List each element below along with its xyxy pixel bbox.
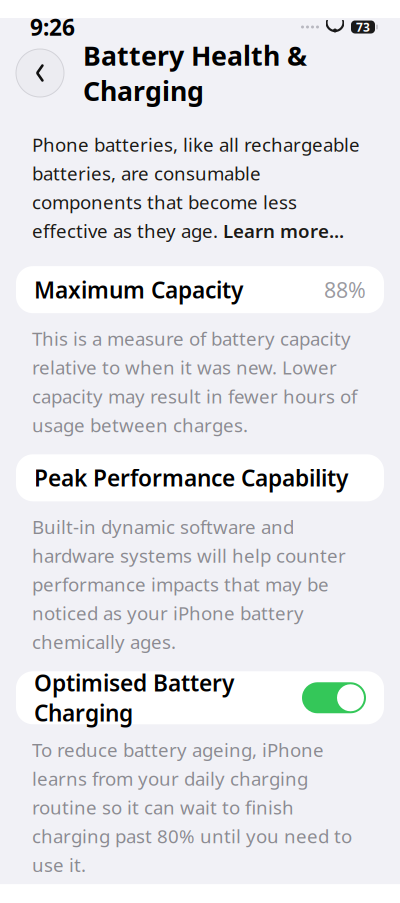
staticText: Optimised Battery Charging (34, 668, 234, 728)
button[interactable]: Optimised Battery Charging (0, 671, 400, 724)
button[interactable]: Maximum Capacity (0, 243, 400, 313)
staticText: To reduce battery ageing, iPhone learns … (32, 737, 352, 877)
staticText: Maximum Capacity (34, 275, 243, 305)
staticText: Peak Performance Capability (34, 463, 348, 493)
staticText: 88% (324, 275, 366, 304)
staticText: 9:26 (30, 12, 75, 42)
staticText: This is a measure of battery capacity re… (32, 326, 357, 437)
staticText: Phone batteries, like all rechargeable b… (32, 132, 360, 243)
staticText: 73 (356, 19, 370, 35)
staticText: Battery Health & Charging (83, 38, 307, 108)
staticText: Built-in dynamic software and hardware s… (32, 514, 346, 654)
button[interactable]: Back (16, 49, 64, 97)
button[interactable]: Peak Performance Capability (0, 454, 400, 501)
